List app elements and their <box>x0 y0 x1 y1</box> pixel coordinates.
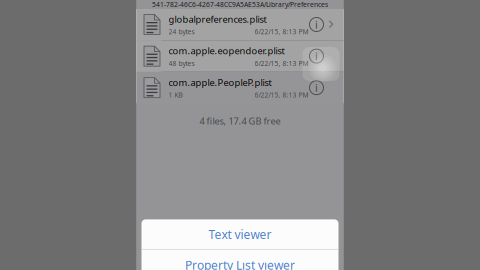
staticText: com.apple.PeopleP.plist <box>168 76 271 88</box>
button[interactable]: File info <box>308 14 324 34</box>
staticText: Text viewer <box>208 226 271 242</box>
staticText: 6/22/15, 8:13 PM <box>254 59 308 68</box>
staticText: Property List viewer <box>185 257 295 270</box>
staticText: 541-782-46C6-4267-48CC9A5AE53A/Library/P… <box>152 0 328 9</box>
staticText: i <box>315 49 318 63</box>
button[interactable]: File info <box>308 46 324 66</box>
button[interactable]: Text viewer <box>141 219 338 249</box>
staticText: i <box>315 81 318 95</box>
staticText: 48 bytes <box>168 59 194 68</box>
staticText: 6/22/15, 8:13 PM <box>254 27 308 36</box>
staticText: 1 KB <box>168 90 182 99</box>
staticText: i <box>315 17 318 32</box>
button[interactable]: Property List viewer <box>141 250 338 270</box>
staticText: com.apple.eopendoer.plist <box>168 44 284 57</box>
button[interactable]: com.apple.PeopleP.plist <box>136 72 343 103</box>
button[interactable]: File info <box>308 78 324 98</box>
staticText: globalpreferences.plist <box>168 13 266 25</box>
staticText: 24 bytes <box>168 27 194 36</box>
staticText: 6/22/15, 8:13 PM <box>254 90 308 99</box>
button[interactable]: com.apple.eopendoer.plist <box>136 41 343 72</box>
staticText: 4 files, 17.4 GB free <box>199 115 280 127</box>
button[interactable]: globalpreferences.plist <box>136 9 343 40</box>
